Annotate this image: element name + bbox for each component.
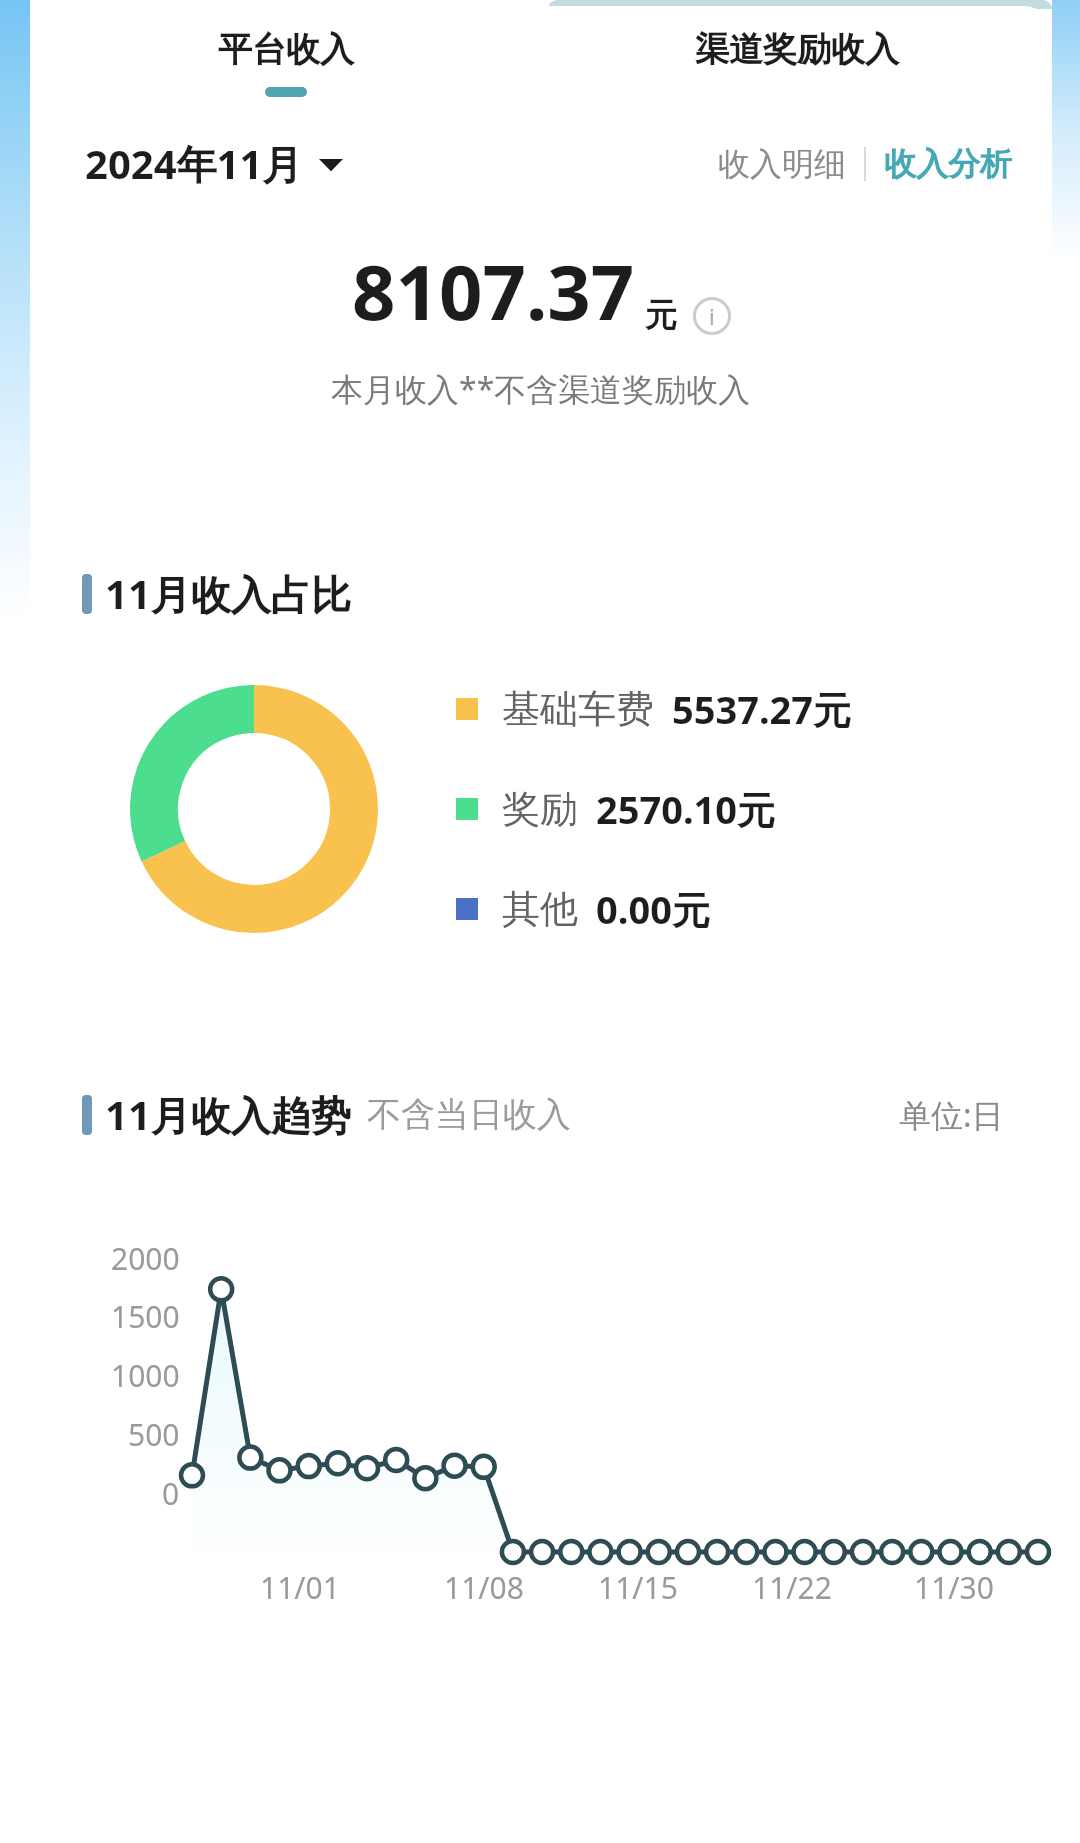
button[interactable]: 收入说明 — [693, 297, 731, 335]
staticText: 11月收入趋势 — [105, 1087, 351, 1142]
staticText: 8107.37 — [352, 239, 635, 343]
staticText: 11月收入占比 — [105, 566, 351, 621]
staticText: 收入分析 — [884, 144, 1012, 184]
button[interactable]: 收入分析 — [884, 144, 1012, 184]
button[interactable]: 平台收入 — [30, 6, 541, 118]
staticText: 不含当日收入 — [367, 1093, 571, 1136]
staticText: 渠道奖励收入 — [695, 28, 899, 71]
staticText: 基础车费 — [502, 685, 654, 733]
staticText: 本月收入**不含渠道奖励收入 — [331, 367, 751, 411]
staticText: 2570.10元 — [596, 783, 776, 835]
staticText: 1500 — [111, 1296, 180, 1337]
staticText: 11/22 — [752, 1567, 832, 1608]
staticText: 11/15 — [598, 1567, 678, 1608]
staticText: 500 — [128, 1414, 180, 1455]
staticText: 0.00元 — [596, 883, 710, 935]
staticText: 收入明细 — [718, 144, 846, 184]
staticText: 其他 — [502, 885, 578, 933]
staticText: 平台收入 — [218, 28, 354, 71]
button[interactable]: 2024年11月 — [85, 136, 343, 191]
staticText: 2024年11月 — [85, 136, 303, 191]
staticText: i — [709, 301, 715, 331]
staticText: 元 — [645, 295, 677, 335]
button[interactable]: 收入明细 — [718, 144, 846, 184]
staticText: 1000 — [111, 1355, 180, 1396]
staticText: 0 — [162, 1473, 180, 1514]
staticText: 11/08 — [444, 1567, 524, 1608]
staticText: 单位:日 — [899, 1093, 1004, 1137]
staticText: 奖励 — [502, 785, 578, 833]
staticText: 11/30 — [914, 1567, 994, 1608]
staticText: 5537.27元 — [672, 683, 852, 735]
button[interactable]: 渠道奖励收入 — [541, 6, 1052, 118]
staticText: 2000 — [111, 1238, 180, 1279]
staticText: 11/01 — [260, 1567, 340, 1608]
